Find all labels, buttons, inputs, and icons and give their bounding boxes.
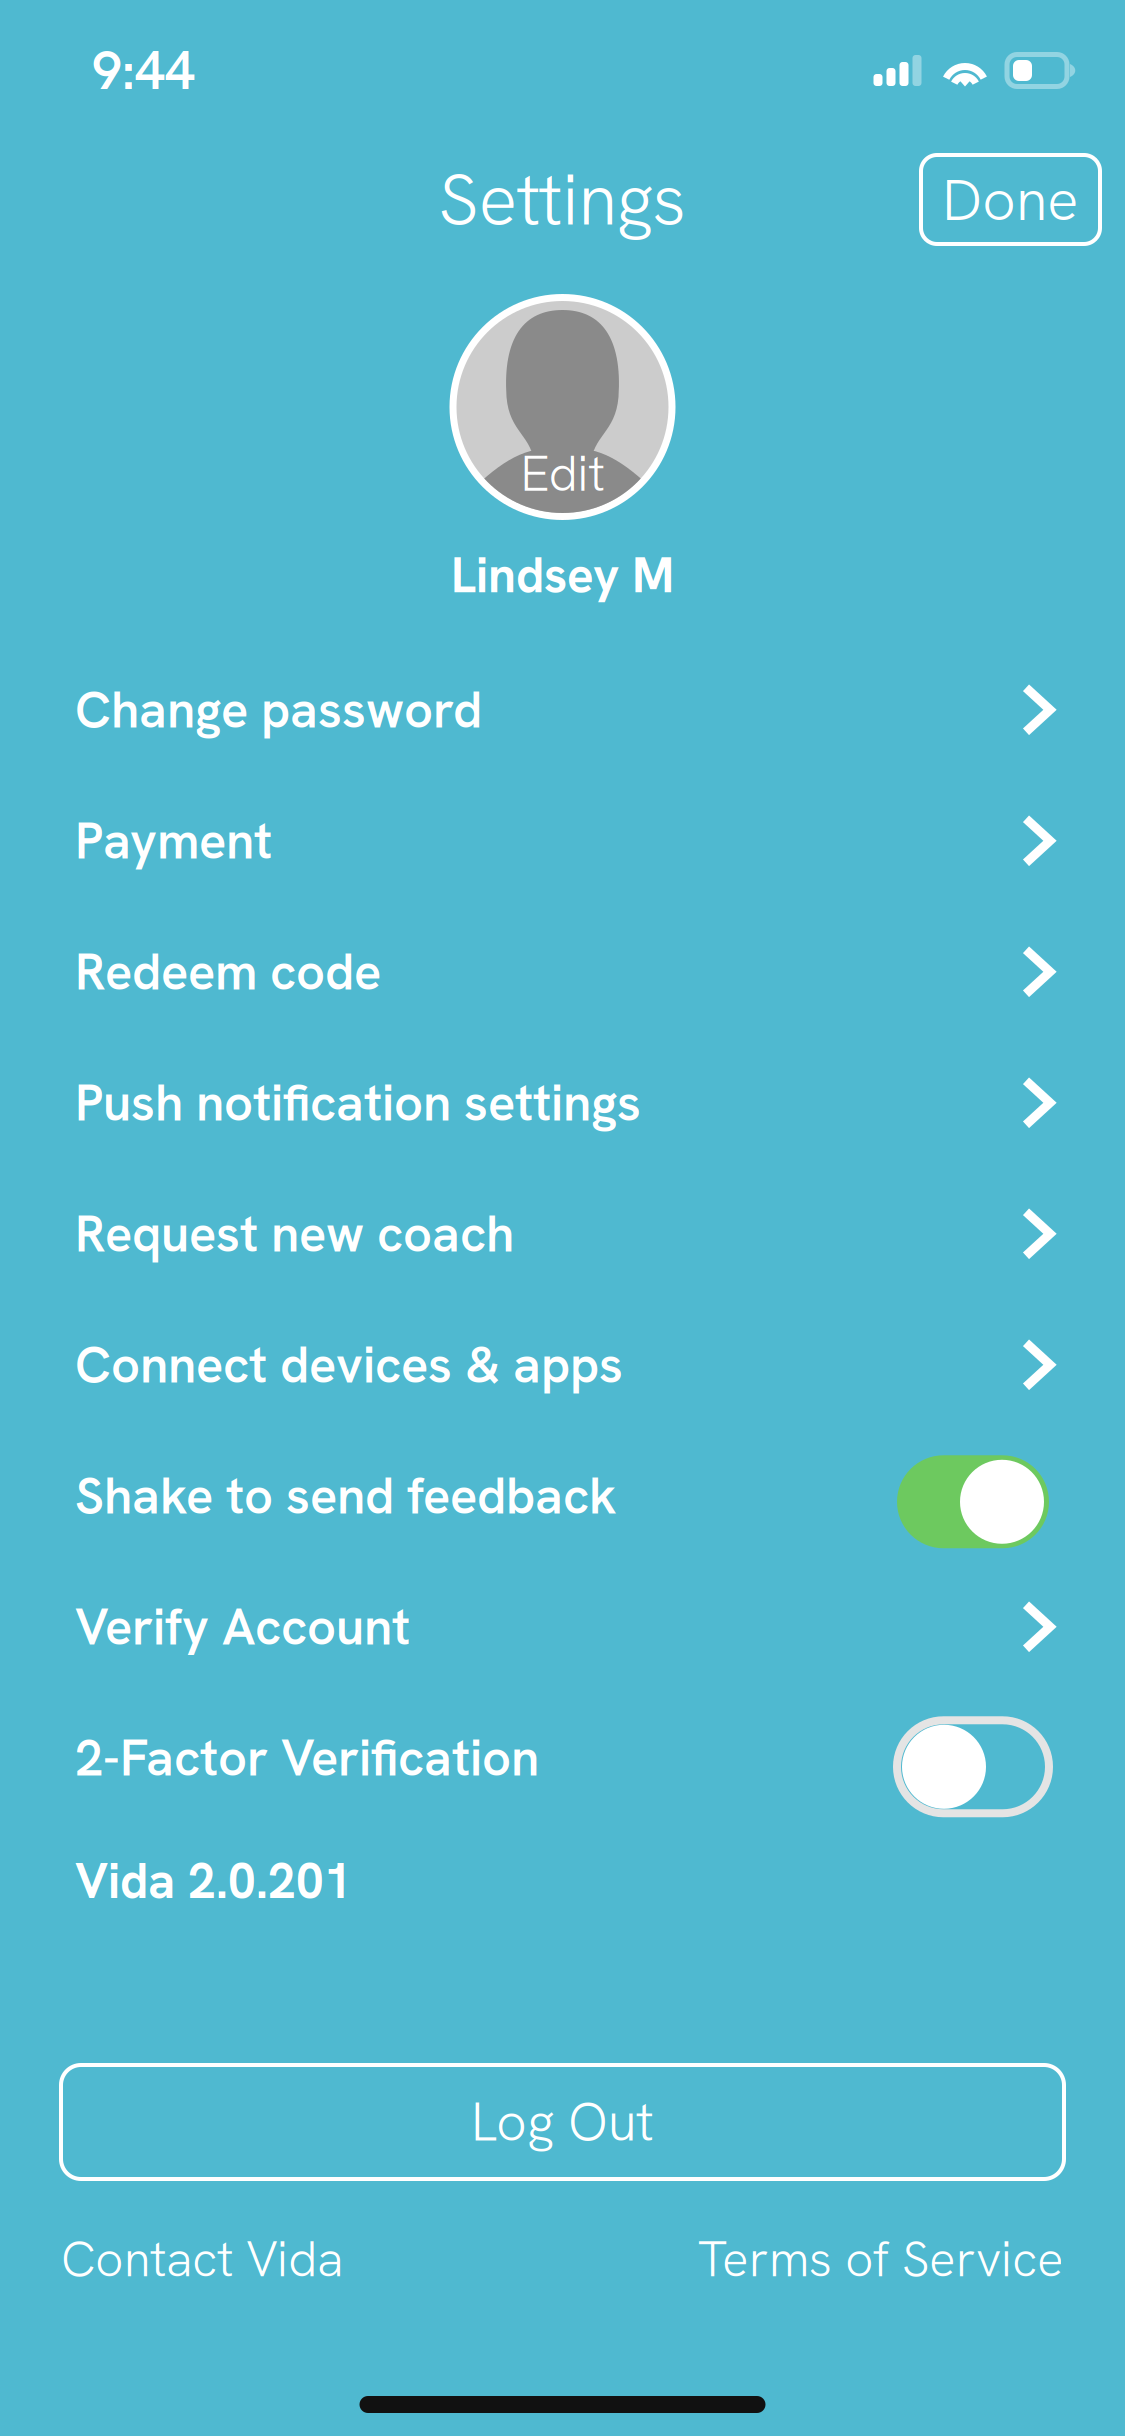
staticText: Done: [942, 161, 1079, 238]
button[interactable]: Change password: [0, 644, 1125, 775]
staticText: 2-Factor Verification: [75, 1725, 539, 1791]
button[interactable]: 2-Factor Verification: [0, 1692, 1125, 1823]
button[interactable]: Redeem code: [0, 906, 1125, 1037]
staticText: Log Out: [471, 2087, 654, 2157]
staticText: Shake to send feedback: [75, 1463, 617, 1529]
staticText: Change password: [75, 677, 482, 743]
staticText: Payment: [75, 808, 272, 874]
button[interactable]: Log Out: [61, 2065, 1064, 2179]
staticText: Terms of Service: [698, 2227, 1064, 2291]
staticText: Lindsey M: [451, 543, 674, 607]
button[interactable]: Verify Account: [0, 1561, 1125, 1692]
button[interactable]: Contact Vida: [61, 2227, 343, 2291]
button[interactable]: Connect devices & apps: [0, 1299, 1125, 1430]
staticText: Push notification settings: [75, 1070, 641, 1136]
button[interactable]: Terms of Service: [698, 2227, 1064, 2291]
button[interactable]: Payment: [0, 775, 1125, 906]
staticText: Connect devices & apps: [75, 1332, 623, 1398]
button[interactable]: Shake to send feedback: [0, 1430, 1125, 1561]
staticText: Vida 2.0.201: [75, 1849, 352, 1913]
button[interactable]: Done: [921, 155, 1100, 244]
staticText: Verify Account: [75, 1594, 410, 1660]
staticText: 9:44: [92, 36, 195, 105]
button[interactable]: Request new coach: [0, 1168, 1125, 1299]
staticText: Edit: [520, 441, 604, 506]
staticText: Settings: [438, 153, 686, 246]
staticText: Redeem code: [75, 939, 381, 1005]
button[interactable]: Edit: [449, 294, 675, 520]
staticText: Contact Vida: [61, 2227, 343, 2291]
button[interactable]: Push notification settings: [0, 1037, 1125, 1168]
staticText: Request new coach: [75, 1201, 514, 1267]
